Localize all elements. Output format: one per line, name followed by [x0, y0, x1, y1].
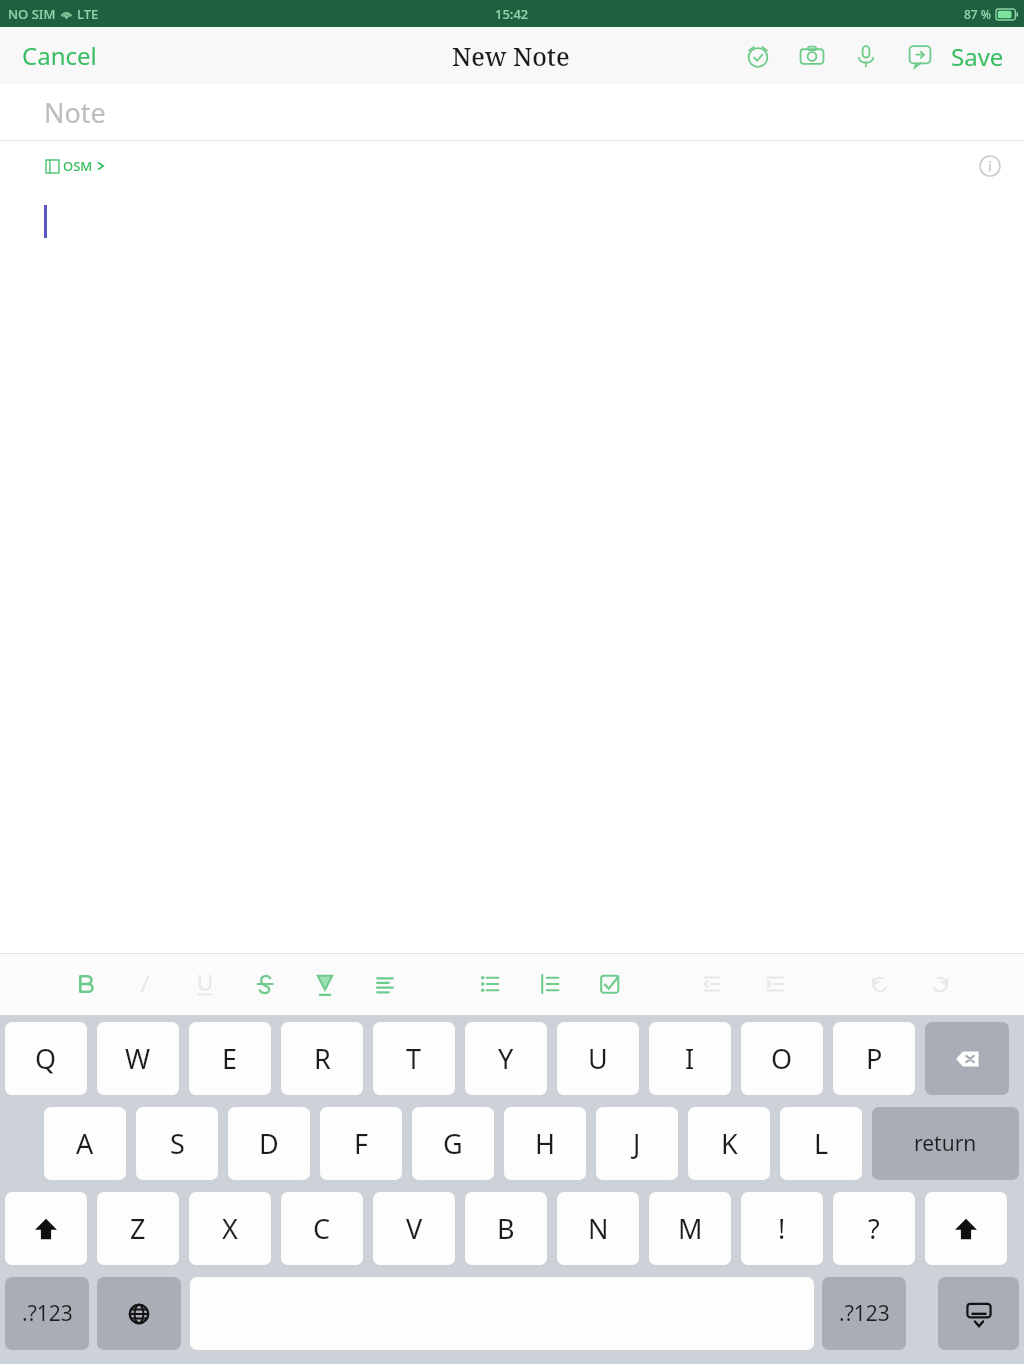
button[interactable]: N	[557, 1192, 639, 1265]
button[interactable]: Attach	[893, 29, 947, 83]
staticText: D	[259, 1125, 279, 1162]
staticText: V	[406, 1210, 423, 1247]
staticText: New Note	[452, 39, 570, 73]
staticText: return	[914, 1129, 977, 1158]
button[interactable]: K	[688, 1107, 770, 1180]
button[interactable]: X	[189, 1192, 271, 1265]
staticText: W	[125, 1040, 151, 1077]
button[interactable]: Note info	[970, 146, 1010, 186]
button[interactable]: Numbered list	[523, 953, 577, 1015]
staticText: E	[222, 1040, 238, 1077]
staticText: Save	[951, 40, 1004, 73]
staticText: .?123	[839, 1299, 890, 1328]
button[interactable]: W	[97, 1022, 179, 1095]
button[interactable]: E	[189, 1022, 271, 1095]
button[interactable]: OSM	[44, 151, 108, 181]
staticText: T	[406, 1040, 422, 1077]
staticText: A	[76, 1125, 94, 1162]
button[interactable]: Underline	[178, 953, 232, 1015]
staticText: C	[313, 1210, 331, 1247]
staticText: J	[633, 1125, 641, 1162]
button[interactable]: Switch language	[97, 1277, 181, 1350]
staticText: LTE	[77, 5, 99, 23]
staticText: 87 %	[964, 6, 992, 22]
button[interactable]: Strikethrough	[238, 953, 292, 1015]
button[interactable]: Cancel	[14, 33, 105, 78]
staticText: 15:42	[495, 5, 529, 23]
staticText: O	[771, 1040, 793, 1077]
staticText: Q	[35, 1040, 57, 1077]
button[interactable]: I	[649, 1022, 731, 1095]
button[interactable]: M	[649, 1192, 731, 1265]
staticText: .?123	[22, 1299, 73, 1328]
button[interactable]: Backspace	[925, 1022, 1009, 1095]
staticText: !	[778, 1210, 786, 1247]
button[interactable]: L	[780, 1107, 862, 1180]
button[interactable]: V	[373, 1192, 455, 1265]
button[interactable]: Checklist	[583, 953, 637, 1015]
button[interactable]: Save	[947, 34, 1020, 79]
button[interactable]: Hide keyboard	[938, 1277, 1019, 1350]
button[interactable]: Camera	[785, 29, 839, 83]
staticText: ?	[868, 1210, 880, 1247]
staticText: Note	[44, 94, 106, 131]
staticText: S	[170, 1125, 185, 1162]
button[interactable]: Shift	[925, 1192, 1007, 1265]
button[interactable]: B	[465, 1192, 547, 1265]
button[interactable]: .?123	[822, 1277, 906, 1350]
button[interactable]: Y	[465, 1022, 547, 1095]
button[interactable]: Bold	[58, 953, 112, 1015]
button[interactable]: Bulleted list	[463, 953, 517, 1015]
button[interactable]: Italic	[118, 953, 172, 1015]
button[interactable]: Undo	[853, 953, 907, 1015]
staticText: F	[354, 1125, 369, 1162]
staticText: B	[497, 1210, 515, 1247]
button[interactable]: A	[44, 1107, 126, 1180]
staticText: H	[535, 1125, 556, 1162]
button[interactable]: Z	[97, 1192, 179, 1265]
button[interactable]: Audio	[839, 29, 893, 83]
staticText: I	[685, 1040, 695, 1077]
button[interactable]: Highlight	[298, 953, 352, 1015]
button[interactable]: .?123	[5, 1277, 89, 1350]
staticText: OSM	[63, 157, 93, 175]
button[interactable]: Increase indent	[748, 953, 802, 1015]
staticText: Y	[498, 1040, 514, 1077]
button[interactable]: Shift	[5, 1192, 87, 1265]
staticText: K	[721, 1125, 738, 1162]
button[interactable]: R	[281, 1022, 363, 1095]
button[interactable]: F	[320, 1107, 402, 1180]
button[interactable]: U	[557, 1022, 639, 1095]
staticText: N	[588, 1210, 609, 1247]
button[interactable]: Reminder	[731, 29, 785, 83]
staticText: P	[866, 1040, 883, 1077]
button[interactable]: P	[833, 1022, 915, 1095]
button[interactable]: J	[596, 1107, 678, 1180]
staticText: G	[443, 1125, 463, 1162]
button[interactable]: O	[741, 1022, 823, 1095]
button[interactable]: ?	[833, 1192, 915, 1265]
button[interactable]: C	[281, 1192, 363, 1265]
staticText: R	[314, 1040, 331, 1077]
button[interactable]: S	[136, 1107, 218, 1180]
button[interactable]: G	[412, 1107, 494, 1180]
button[interactable]: Decrease indent	[685, 953, 739, 1015]
button[interactable]: H	[504, 1107, 586, 1180]
button[interactable]: Align	[358, 953, 412, 1015]
staticText: Cancel	[22, 39, 97, 72]
staticText: NO SIM	[8, 5, 56, 23]
button[interactable]: Q	[5, 1022, 87, 1095]
staticText: X	[222, 1210, 238, 1247]
button[interactable]: D	[228, 1107, 310, 1180]
button[interactable]: return	[872, 1107, 1019, 1180]
staticText: L	[814, 1125, 829, 1162]
button[interactable]: T	[373, 1022, 455, 1095]
staticText: M	[678, 1210, 703, 1247]
button[interactable]: !	[741, 1192, 823, 1265]
staticText: U	[588, 1040, 608, 1077]
staticText: Z	[130, 1210, 146, 1247]
button[interactable]: Redo	[913, 953, 967, 1015]
